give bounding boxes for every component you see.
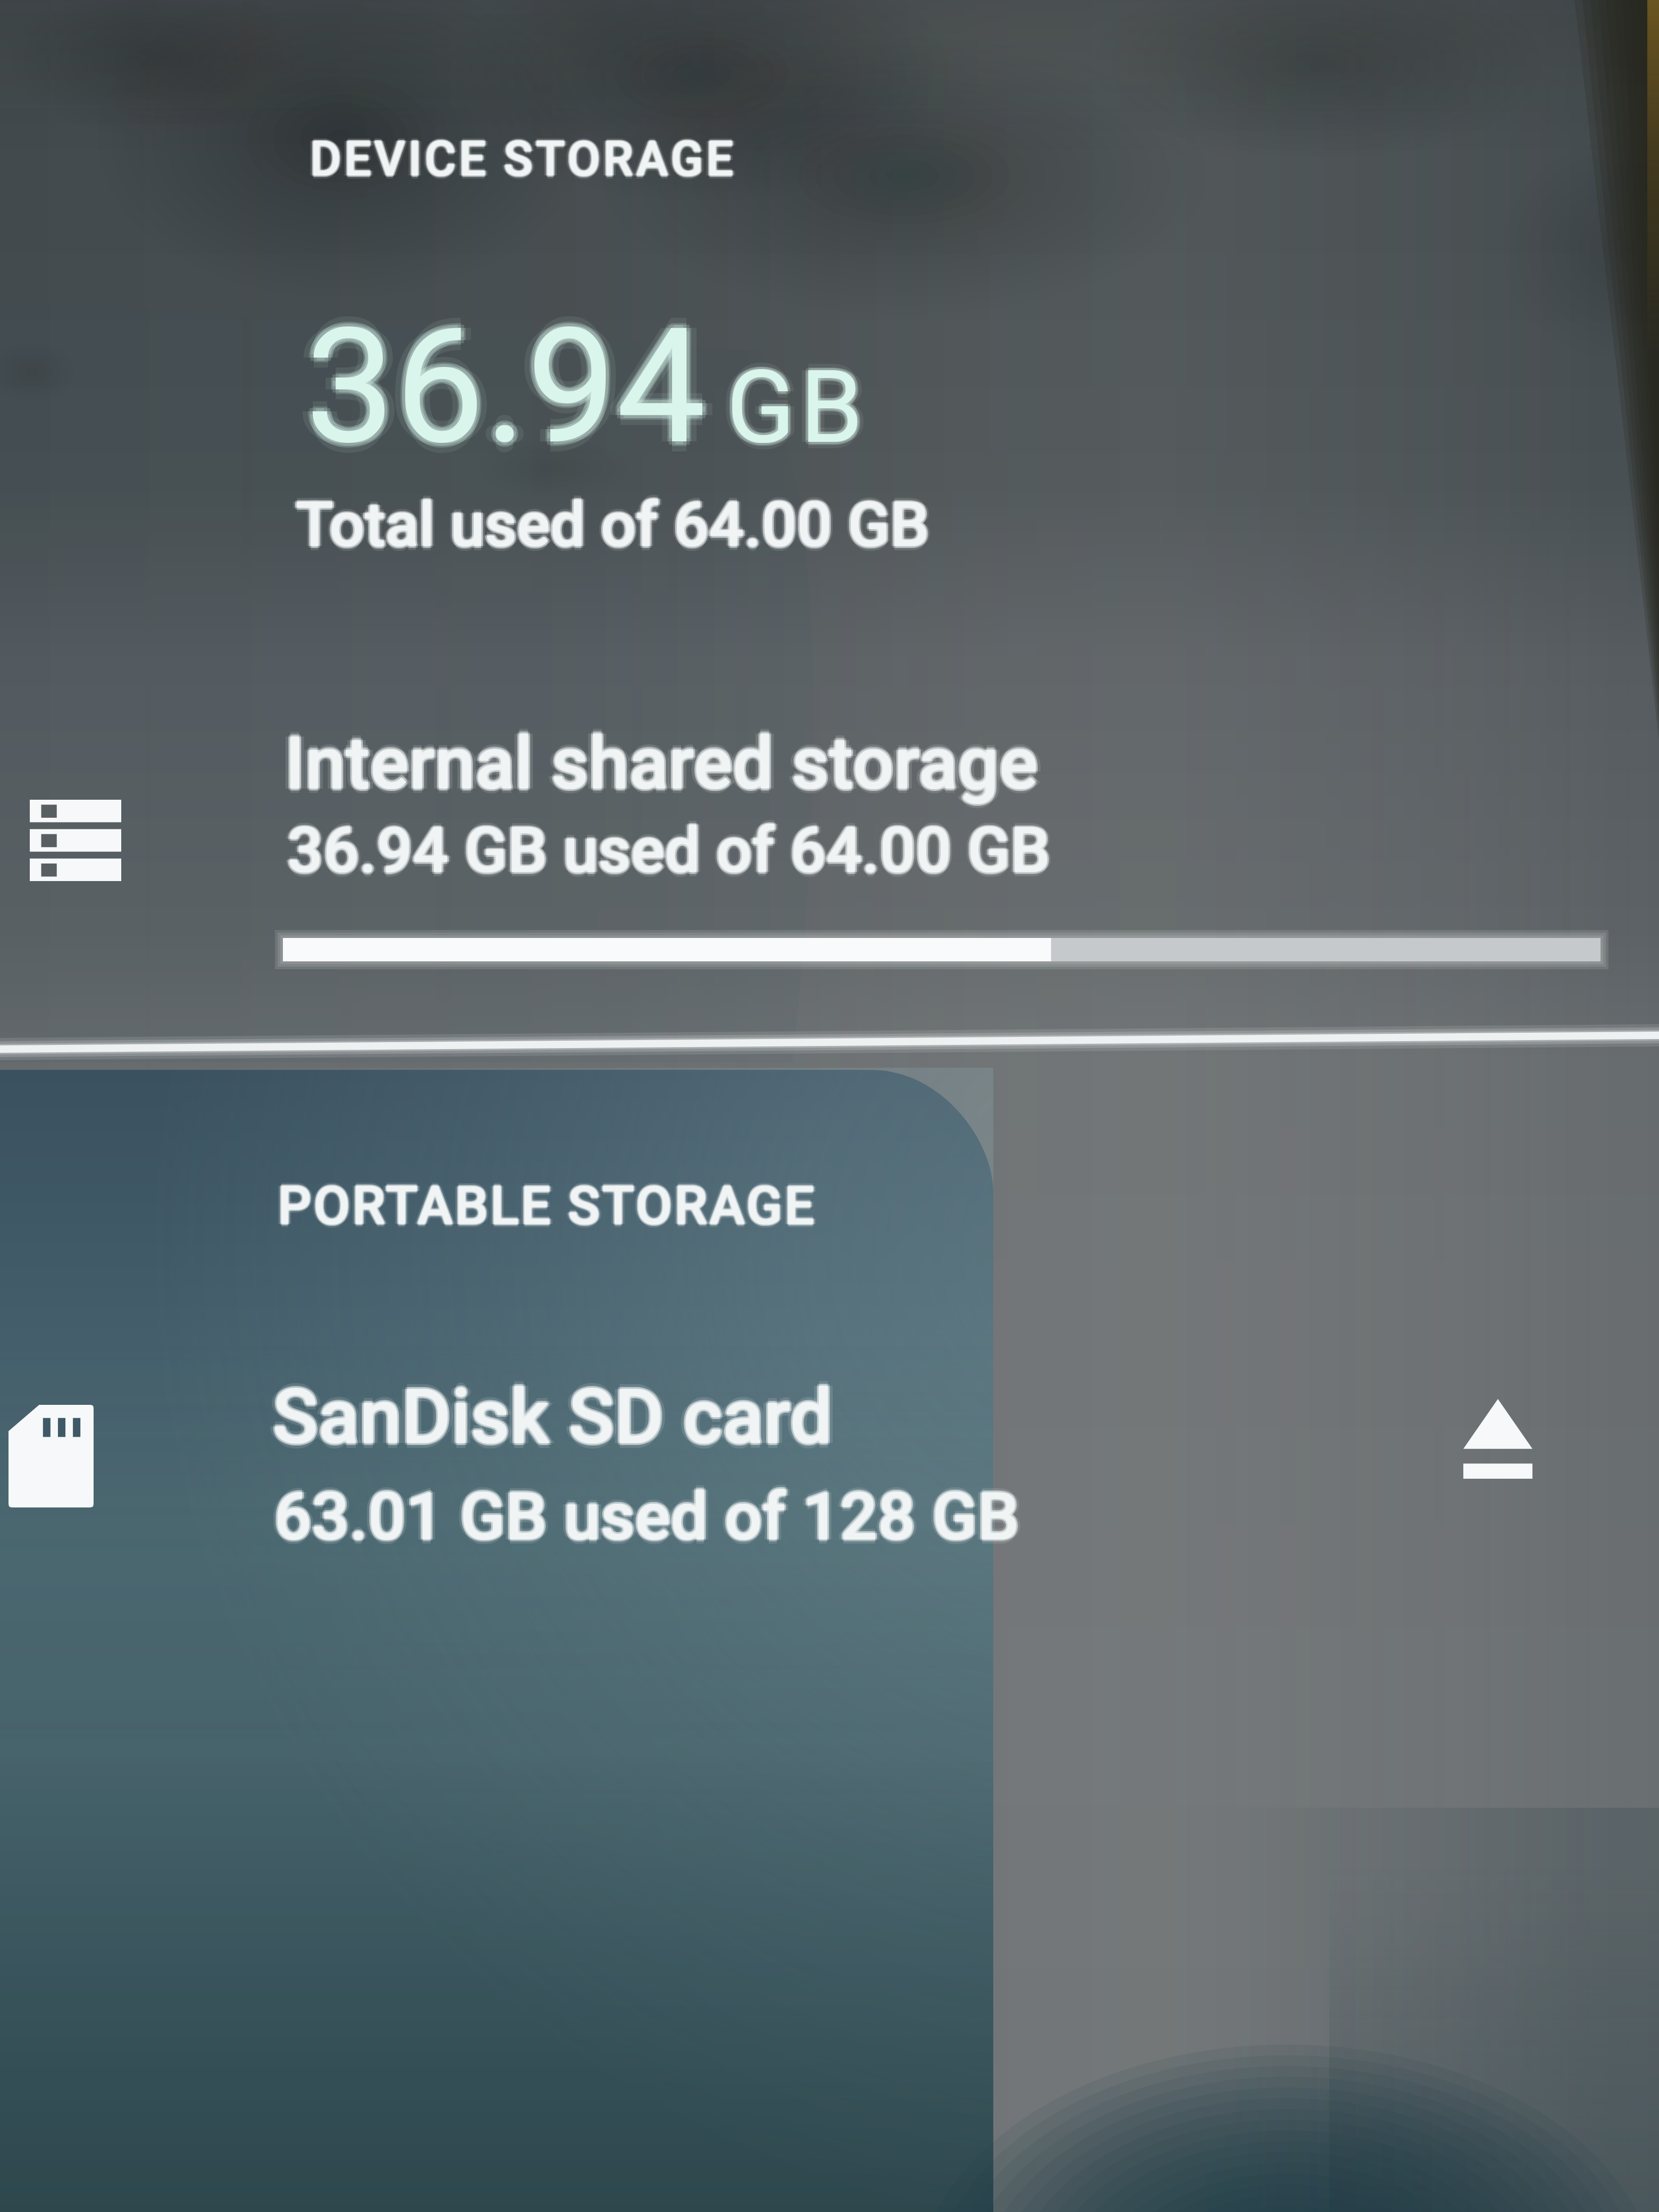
- staticText: 63.01 GB used of 128 GB: [274, 1478, 1019, 1555]
- staticText: 36.94: [308, 297, 709, 484]
- staticText: 36.94: [302, 290, 703, 477]
- staticText: 36.94 GB used of 64.00 GB: [286, 812, 1049, 886]
- staticText: SanDisk SD card: [272, 1372, 833, 1462]
- staticText: 36.94 GB used of 64.00 GB: [287, 816, 1051, 890]
- staticText: GB: [726, 346, 868, 464]
- staticText: PORTABLE STORAGE: [278, 1173, 817, 1235]
- staticText: SanDisk SD card: [277, 1372, 837, 1462]
- staticText: 36.94: [302, 297, 703, 484]
- staticText: GB: [720, 348, 861, 467]
- staticText: PORTABLE STORAGE: [274, 1175, 814, 1237]
- staticText: 63.01 GB used of 128 GB: [274, 1476, 1019, 1553]
- staticText: Total used of 64.00 GB: [297, 487, 931, 560]
- staticText: 63.01 GB used of 128 GB: [272, 1479, 1018, 1556]
- staticText: DEVICE STORAGE: [312, 131, 738, 187]
- staticText: Total used of 64.00 GB: [296, 492, 929, 565]
- staticText: 63.01 GB used of 128 GB: [275, 1476, 1021, 1554]
- staticText: SanDisk SD card: [272, 1368, 833, 1457]
- staticText: GB: [723, 348, 865, 467]
- staticText: Total used of 64.00 GB: [298, 488, 932, 561]
- staticText: GB: [726, 348, 868, 467]
- staticText: 63.01 GB used of 128 GB: [276, 1478, 1021, 1555]
- staticText: 36.94: [300, 294, 701, 481]
- staticText: GB: [733, 348, 874, 467]
- staticText: PORTABLE STORAGE: [278, 1175, 817, 1237]
- staticText: 63.01 GB used of 128 GB: [275, 1479, 1021, 1556]
- button[interactable]: SanDisk SD card: [0, 1297, 1659, 1595]
- staticText: 36.94 GB used of 64.00 GB: [285, 814, 1049, 887]
- staticText: Internal shared storage: [283, 719, 1037, 805]
- staticText: Internal shared storage: [284, 716, 1038, 802]
- staticText: DEVICE STORAGE: [310, 130, 736, 186]
- staticText: GB: [728, 346, 870, 465]
- staticText: GB: [726, 355, 868, 473]
- staticText: Total used of 64.00 GB: [296, 490, 929, 563]
- staticText: Internal shared storage: [284, 718, 1038, 804]
- staticText: Internal shared storage: [289, 721, 1043, 807]
- button[interactable]: Eject SD card: [1463, 1399, 1532, 1497]
- staticText: Internal shared storage: [286, 719, 1040, 805]
- staticText: 63.01 GB used of 128 GB: [272, 1478, 1017, 1555]
- staticText: GB: [726, 351, 868, 470]
- staticText: 36.94 GB used of 64.00 GB: [286, 815, 1049, 889]
- staticText: PORTABLE STORAGE: [276, 1174, 816, 1236]
- staticText: Internal shared storage: [280, 721, 1034, 807]
- staticText: Total used of 64.00 GB: [296, 488, 929, 561]
- staticText: SanDisk SD card: [271, 1371, 831, 1460]
- staticText: 36.94: [295, 294, 696, 481]
- other: Internal shared storage icon: [30, 800, 121, 881]
- staticText: PORTABLE STORAGE: [276, 1175, 815, 1237]
- staticText: Internal shared storage: [286, 723, 1040, 808]
- staticText: 63.01 GB used of 128 GB: [278, 1478, 1024, 1555]
- other: SD card: [9, 1405, 94, 1507]
- staticText: 36.94: [305, 294, 706, 481]
- staticText: Internal shared storage: [284, 721, 1038, 807]
- staticText: 63.01 GB used of 128 GB: [272, 1476, 1018, 1554]
- staticText: SanDisk SD card: [271, 1374, 831, 1463]
- staticText: DEVICE STORAGE: [311, 132, 738, 188]
- staticText: Total used of 64.00 GB: [294, 488, 927, 561]
- staticText: 63.01 GB used of 128 GB: [274, 1482, 1019, 1560]
- staticText: SanDisk SD card: [272, 1375, 833, 1464]
- staticText: 63.01 GB used of 128 GB: [274, 1473, 1019, 1551]
- staticText: 36.94 GB used of 64.00 GB: [287, 814, 1051, 887]
- staticText: DEVICE STORAGE: [310, 129, 736, 185]
- staticText: 36.94 GB used of 64.00 GB: [289, 812, 1052, 886]
- staticText: DEVICE STORAGE: [310, 131, 736, 187]
- staticText: GB: [730, 348, 871, 467]
- staticText: SanDisk SD card: [270, 1372, 831, 1462]
- staticText: PORTABLE STORAGE: [276, 1176, 816, 1238]
- staticText: Internal shared storage: [283, 723, 1037, 808]
- staticText: 36.94: [305, 289, 706, 476]
- button[interactable]: Internal shared storage: [0, 654, 1659, 1037]
- staticText: 36.94: [305, 298, 706, 485]
- staticText: PORTABLE STORAGE: [279, 1175, 818, 1237]
- staticText: Total used of 64.00 GB: [296, 484, 929, 557]
- staticText: 36.94 GB used of 64.00 GB: [291, 814, 1054, 887]
- staticText: DEVICE STORAGE: [313, 131, 740, 187]
- staticText: Total used of 64.00 GB: [299, 488, 933, 561]
- staticText: PORTABLE STORAGE: [278, 1176, 817, 1238]
- staticText: PORTABLE STORAGE: [278, 1178, 817, 1240]
- staticText: SanDisk SD card: [272, 1377, 833, 1467]
- staticText: 36.94: [308, 290, 709, 477]
- staticText: Total used of 64.00 GB: [292, 488, 926, 561]
- staticText: Internal shared storage: [284, 723, 1038, 809]
- staticText: Internal shared storage: [284, 725, 1038, 811]
- staticText: PORTABLE STORAGE: [281, 1175, 820, 1237]
- staticText: 36.94 GB used of 64.00 GB: [287, 810, 1051, 884]
- staticText: DEVICE STORAGE: [309, 132, 735, 188]
- staticText: PORTABLE STORAGE: [279, 1176, 818, 1238]
- staticText: 36.94 GB used of 64.00 GB: [287, 812, 1051, 886]
- staticText: SanDisk SD card: [267, 1372, 828, 1462]
- staticText: 36.94: [305, 283, 706, 471]
- staticText: DEVICE STORAGE: [308, 131, 735, 187]
- staticText: Internal shared storage: [282, 721, 1036, 807]
- staticText: Total used of 64.00 GB: [294, 487, 928, 560]
- staticText: SanDisk SD card: [274, 1374, 834, 1463]
- staticText: 36.94 GB used of 64.00 GB: [283, 814, 1047, 887]
- staticText: DEVICE STORAGE: [311, 130, 738, 186]
- staticText: Total used of 64.00 GB: [296, 487, 929, 559]
- staticText: 63.01 GB used of 128 GB: [274, 1480, 1019, 1557]
- staticText: PORTABLE STORAGE: [279, 1174, 818, 1236]
